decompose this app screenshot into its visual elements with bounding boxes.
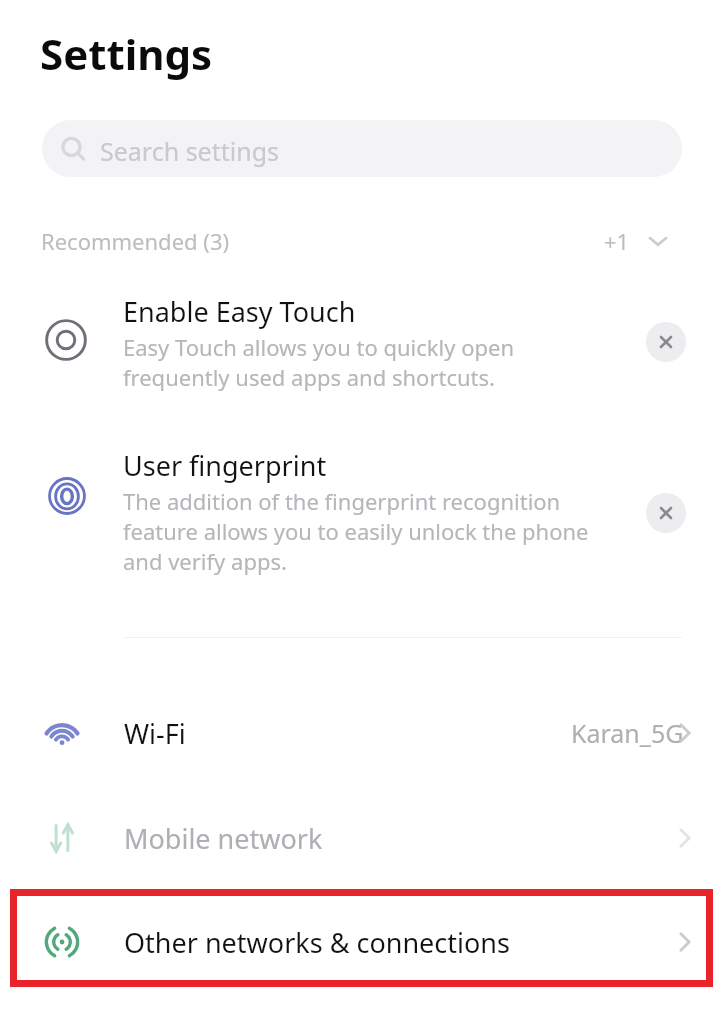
staticText: Settings xyxy=(40,25,213,82)
button[interactable]: Search settings xyxy=(42,120,682,177)
button[interactable]: Dismiss xyxy=(646,493,686,533)
staticText: Enable Easy Touch xyxy=(123,293,356,330)
staticText: Wi-Fi xyxy=(124,715,186,752)
staticText: Easy Touch allows you to quickly open fr… xyxy=(123,332,515,392)
staticText: +1 xyxy=(604,226,630,256)
staticText: Other networks & connections xyxy=(124,924,510,961)
staticText: Recommended (3) xyxy=(41,226,230,256)
button[interactable]: Wi-Fi xyxy=(0,690,724,776)
staticText: User fingerprint xyxy=(123,447,327,484)
staticText: Karan_5G xyxy=(571,716,684,750)
staticText: Mobile network xyxy=(124,820,323,857)
staticText: The addition of the fingerprint recognit… xyxy=(123,486,589,576)
button[interactable]: Mobile network xyxy=(0,795,724,881)
button[interactable]: Dismiss xyxy=(646,322,686,362)
staticText: Search settings xyxy=(100,134,280,168)
button[interactable]: Enable Easy Touch xyxy=(0,282,724,400)
button[interactable]: Expand recommended xyxy=(604,222,670,260)
button[interactable]: Other networks & connections xyxy=(0,899,724,985)
button[interactable]: User fingerprint xyxy=(0,435,724,583)
